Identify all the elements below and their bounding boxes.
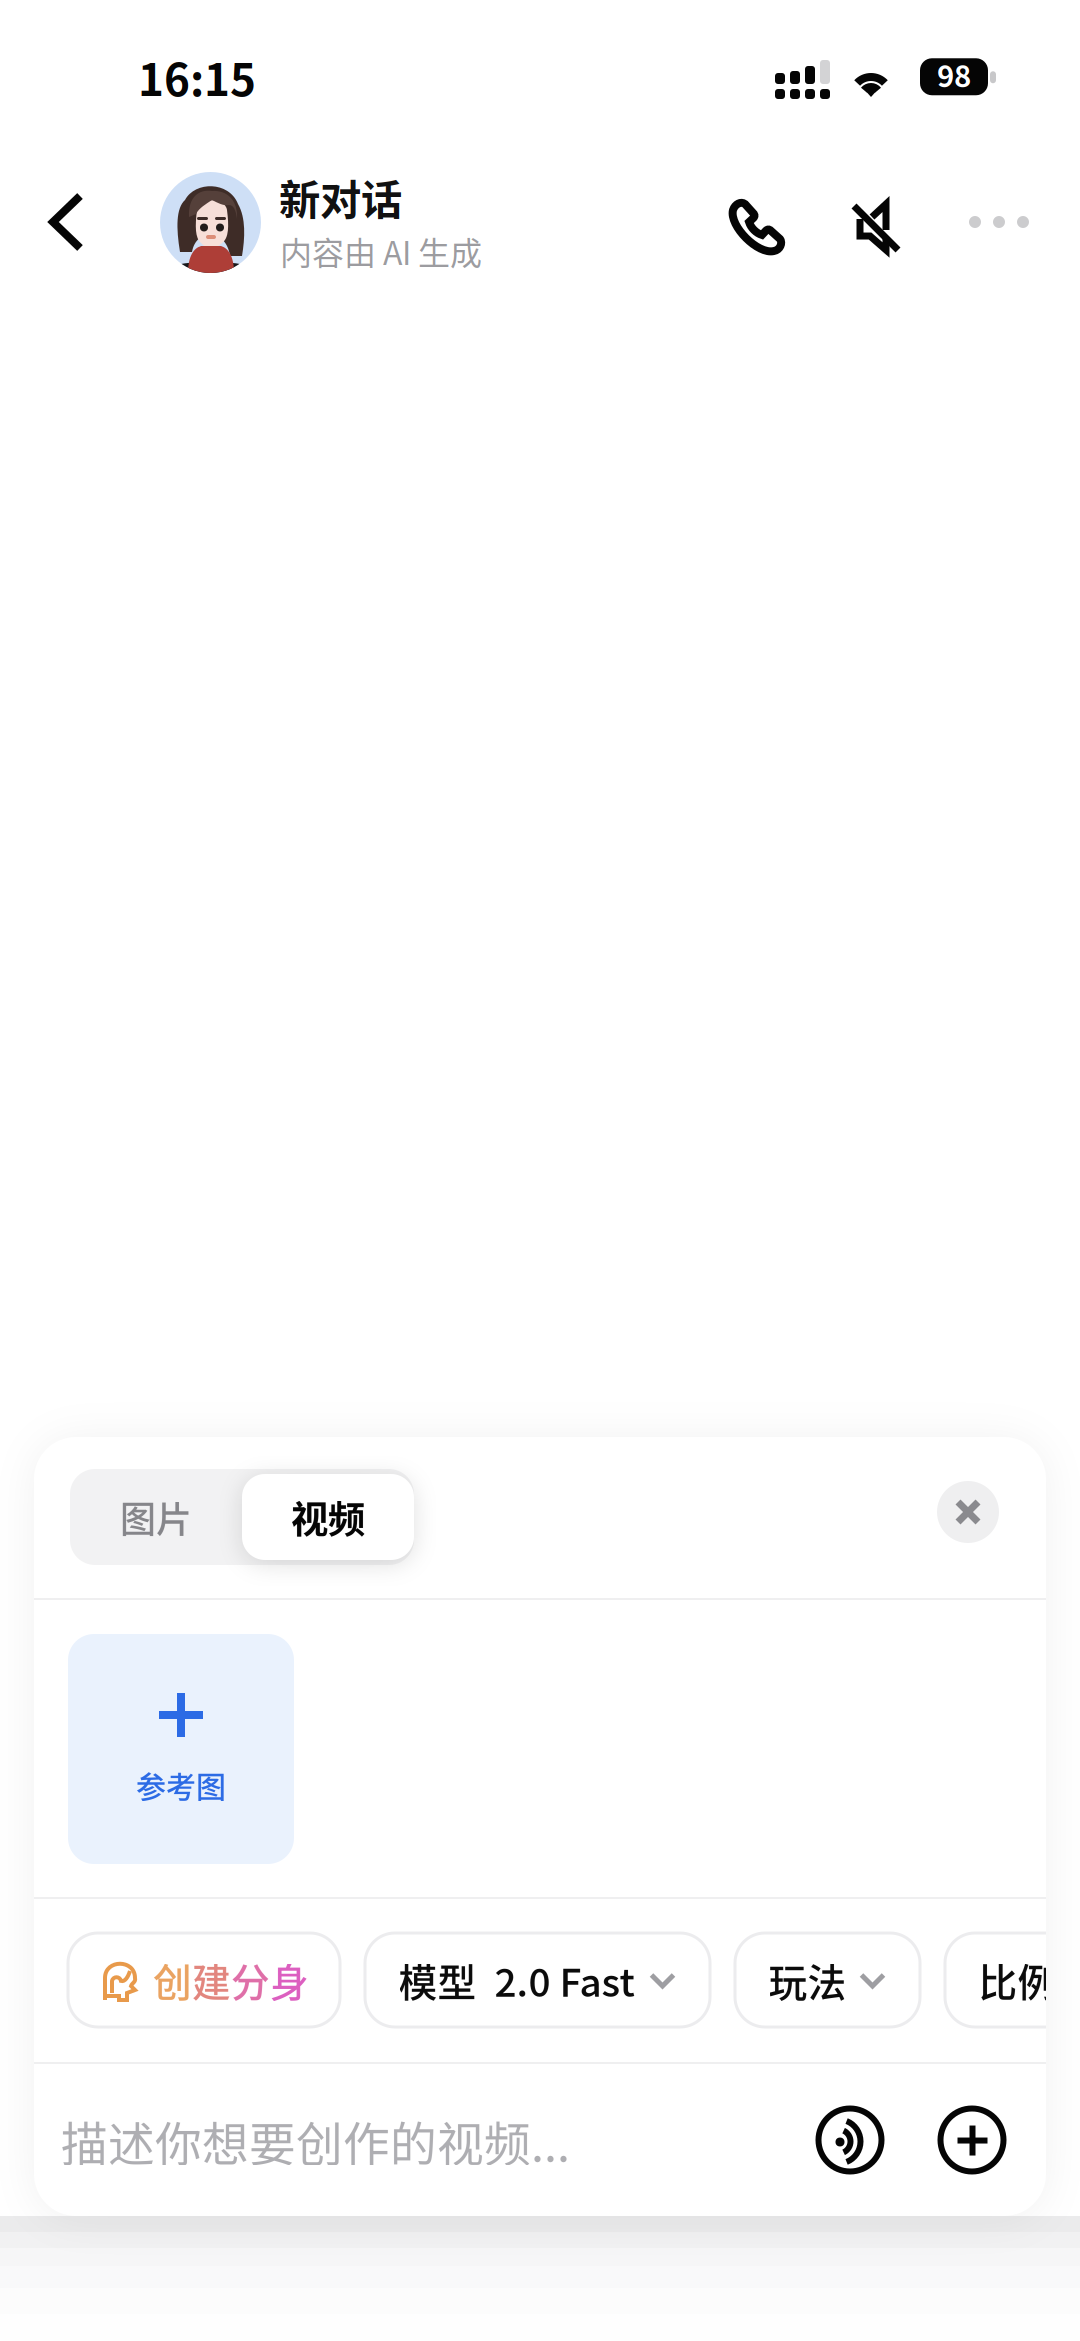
button[interactable]: 视频: [242, 1474, 414, 1560]
staticText: 描述你想要创作的视频...: [61, 2107, 570, 2175]
button[interactable]: Back: [18, 182, 98, 262]
staticText: 比例: [978, 1952, 1056, 2008]
staticText: 视频: [291, 1490, 365, 1544]
staticText: 内容由 AI 生成: [280, 228, 482, 274]
staticText: 新对话: [279, 167, 402, 227]
button[interactable]: 模型 2.0 Fast: [365, 1933, 710, 2027]
staticText: 图片: [120, 1491, 192, 1543]
button[interactable]: 比例: [945, 1933, 1080, 2027]
staticText: 98: [937, 53, 971, 96]
staticText: 分: [231, 1952, 270, 2008]
button[interactable]: Add: [939, 2107, 1005, 2173]
staticText: 参考图: [136, 1763, 226, 1806]
button[interactable]: 创: [68, 1933, 340, 2027]
staticText: 玩法: [768, 1952, 846, 2008]
staticText: 创: [153, 1952, 192, 2008]
button[interactable]: 参考图: [68, 1634, 294, 1864]
staticText: 模型 2.0 Fast: [398, 1952, 634, 2008]
button[interactable]: Close: [937, 1481, 999, 1543]
button[interactable]: Mute: [836, 181, 922, 273]
button[interactable]: 玩法: [735, 1933, 920, 2027]
button[interactable]: Voice input: [817, 2107, 883, 2173]
staticText: 建: [192, 1952, 231, 2008]
button[interactable]: 图片: [70, 1469, 242, 1565]
staticText: 身: [270, 1952, 309, 2008]
button[interactable]: Call: [714, 181, 806, 273]
button[interactable]: More: [955, 198, 1043, 246]
staticText: 16:15: [138, 45, 256, 109]
